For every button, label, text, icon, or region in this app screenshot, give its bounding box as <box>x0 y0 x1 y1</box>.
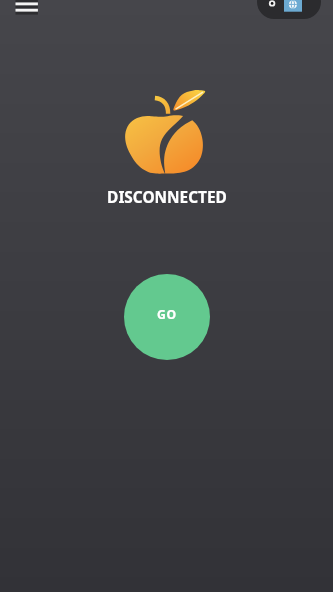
staticText: DISCONNECTED <box>107 187 227 208</box>
button[interactable]: Open navigation menu <box>0 0 44 32</box>
button[interactable]: GO <box>124 274 210 360</box>
staticText: GO <box>157 306 177 323</box>
